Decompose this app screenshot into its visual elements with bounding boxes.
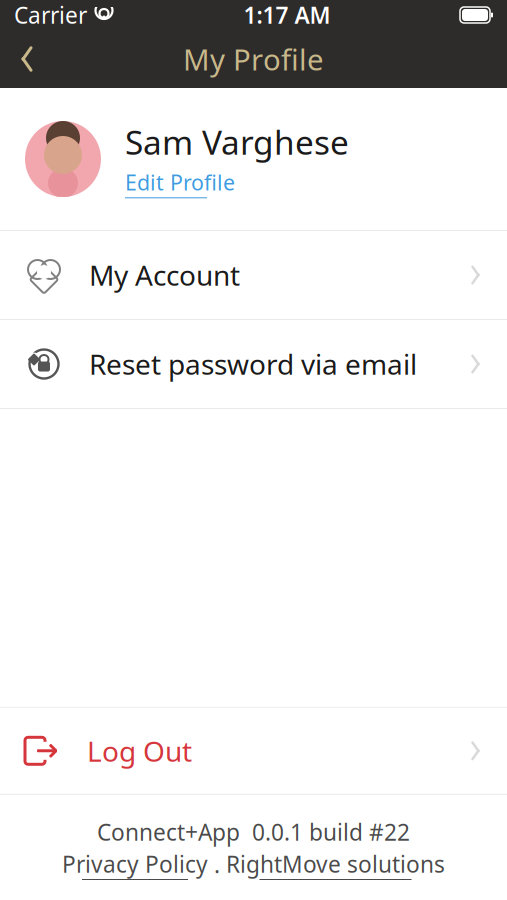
staticText: My Account [89,256,240,294]
staticText: RightMove solutions [226,849,445,879]
staticText: Sam Varghese [125,120,349,164]
button[interactable]: RightMove solutions [226,849,445,880]
button[interactable]: My Account [0,231,507,319]
staticText: My Profile [183,39,324,78]
staticText: 1:17 AM [243,0,330,30]
button[interactable]: Reset password via email [0,320,507,408]
button[interactable]: Edit Profile [125,168,235,198]
staticText: Connect+App 0.0.1 build #22 [97,817,410,847]
button[interactable]: Privacy Policy [62,849,208,880]
button[interactable]: Back [0,30,54,88]
staticText: Privacy Policy [62,849,208,879]
staticText: Reset password via email [89,345,417,383]
staticText: Carrier [14,0,87,30]
staticText: Log Out [87,732,192,769]
staticText: . [208,849,226,879]
button[interactable]: Log Out [0,708,507,794]
staticText: Edit Profile [125,168,235,196]
